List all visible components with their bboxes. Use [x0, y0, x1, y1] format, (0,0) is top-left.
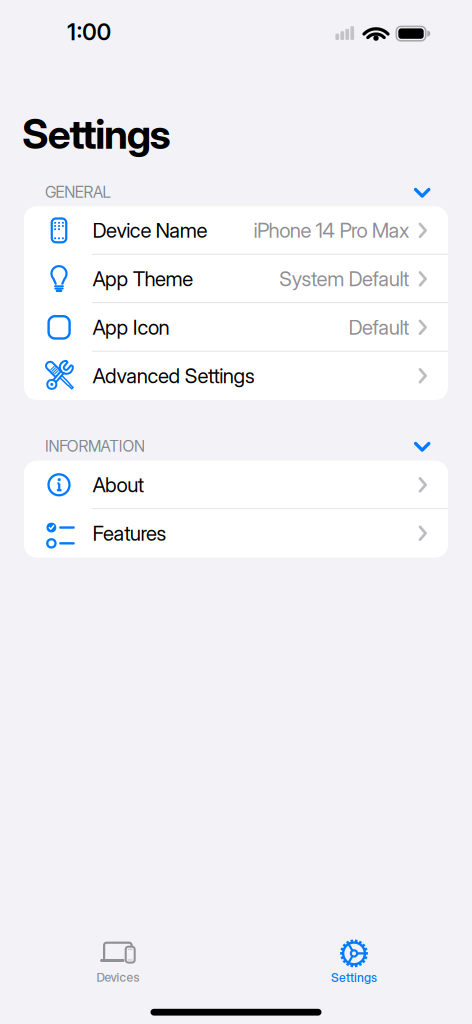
staticText: Advanced Settings — [92, 363, 255, 388]
button[interactable]: Features — [24, 509, 448, 558]
staticText: Default — [348, 315, 409, 340]
button[interactable]: Collapse GENERAL section — [407, 180, 437, 206]
staticText: Device Name — [92, 218, 207, 243]
button[interactable]: Advanced Settings — [24, 352, 448, 400]
staticText: App Icon — [92, 315, 170, 340]
staticText: 1:00 — [67, 18, 111, 46]
button[interactable]: Settings — [284, 926, 424, 998]
staticText: Devices — [96, 970, 139, 985]
staticText: About — [92, 472, 144, 497]
staticText: Settings — [22, 109, 171, 159]
staticText: iPhone 14 Pro Max — [253, 218, 409, 243]
staticText: Settings — [331, 970, 377, 985]
button[interactable]: App Theme — [24, 255, 448, 303]
staticText: App Theme — [92, 266, 193, 291]
staticText: GENERAL — [45, 183, 111, 201]
button[interactable]: About — [24, 461, 448, 509]
staticText: Features — [92, 521, 167, 546]
button[interactable]: Devices — [48, 926, 188, 998]
staticText: System Default — [279, 266, 409, 291]
button[interactable]: App Icon — [24, 303, 448, 352]
staticText: INFORMATION — [45, 437, 145, 455]
button[interactable]: Device Name — [24, 206, 448, 255]
button[interactable]: Collapse INFORMATION section — [407, 434, 437, 460]
